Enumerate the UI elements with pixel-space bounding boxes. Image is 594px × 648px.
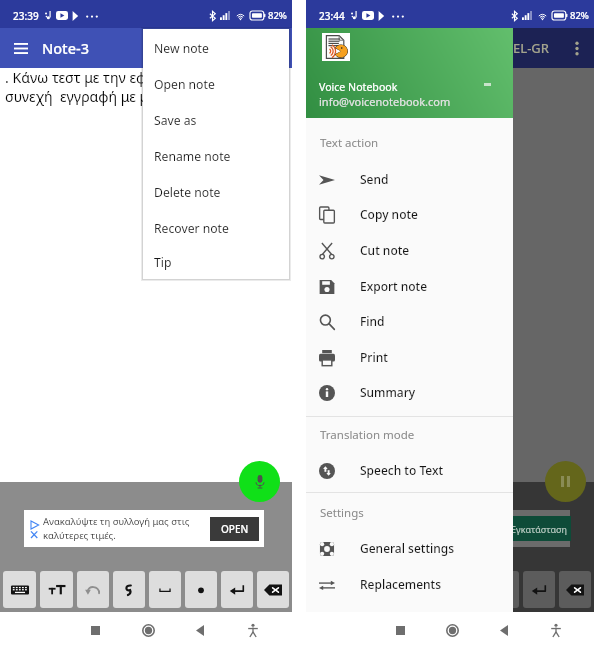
button[interactable]: Open note [143,66,289,102]
staticText: Rename note [154,148,231,165]
staticText: New note [154,40,209,57]
button[interactable]: Accessibility [239,616,267,644]
button[interactable]: Summary [306,374,513,410]
button[interactable]: Undo [77,571,109,608]
button[interactable]: Speech to Text [306,452,513,488]
button[interactable]: Tip [143,246,289,279]
button[interactable]: Back [490,616,518,644]
button[interactable]: Print [306,339,513,375]
button[interactable]: Send [306,161,513,197]
staticText: Εγκατάσταση [511,523,567,535]
staticText: 23:44 [319,9,345,23]
staticText: 82% [570,9,589,22]
staticText: Delete note [154,184,221,201]
staticText: Settings [320,505,364,521]
button[interactable]: Accessibility [542,616,570,644]
staticText: Recover note [154,220,229,237]
button[interactable]: Home [438,616,466,644]
button[interactable]: Export note [306,268,513,304]
staticText: General settings [360,540,455,556]
staticText: 82% [268,9,287,22]
button[interactable]: Space [149,571,181,608]
staticText: OPEN [221,522,249,536]
staticText: Print [360,349,388,365]
staticText: Translation mode [320,427,415,443]
button[interactable]: Comma [113,571,145,608]
button[interactable]: Open navigation drawer [10,37,32,59]
button[interactable]: General settings [306,530,513,566]
button[interactable]: Recent apps [386,616,414,644]
staticText: Voice Notebook [319,80,398,94]
button[interactable]: New note [143,30,289,66]
button[interactable]: Delete [257,571,289,608]
staticText: ήματα π.χ. [306,71,377,90]
button[interactable]: Replacements [306,566,513,602]
staticText: Summary [360,384,416,400]
staticText: Copy note [360,206,418,222]
button[interactable]: Back [186,616,214,644]
staticText: Send [360,171,389,187]
button[interactable]: Recover note [143,210,289,246]
staticText: info@voicenotebook.com [319,94,451,109]
button[interactable]: Save as [143,102,289,138]
staticText: Speech to Text [360,462,444,478]
button[interactable]: Period [185,571,217,608]
button[interactable]: Home [134,616,162,644]
staticText: Ανακαλύψτε τη συλλογή μας στις [43,515,190,528]
button[interactable]: Text size [40,571,73,608]
staticText: Replacements [360,576,442,592]
staticText: καλύτερες τιμές. [43,529,116,542]
button[interactable]: Record [239,461,280,502]
staticText: EL-GR [513,39,550,57]
button[interactable]: Recent apps [81,616,109,644]
button[interactable]: More options [566,37,588,59]
staticText: Cut note [360,242,410,258]
staticText: Find [360,313,385,329]
button[interactable]: Rename note [143,138,289,174]
staticText: 23:39 [13,9,39,23]
staticText: συνεχή εγγραφή με μεγάλα [5,87,187,106]
staticText: Text action [320,135,379,151]
staticText: Export note [360,278,428,294]
button[interactable]: Keyboard [3,571,36,608]
staticText: . Κάνω τεστ με την εφαρμογή για [5,68,221,87]
staticText: Open note [154,76,215,93]
staticText: Tip [154,254,172,271]
button[interactable]: Cut note [306,232,513,268]
button[interactable]: Enter [221,571,253,608]
button[interactable]: OPEN [210,517,259,541]
button[interactable]: Copy note [306,196,513,232]
button[interactable]: Delete note [143,174,289,210]
button[interactable]: Ανακαλύψτε τη συλλογή μας στις [24,510,264,547]
staticText: Save as [154,112,197,129]
button[interactable]: Find [306,303,513,339]
staticText: Note-3 [42,38,89,58]
